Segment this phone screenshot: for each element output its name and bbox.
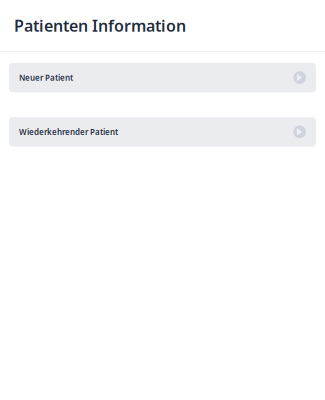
- button[interactable]: Neuer Patient: [9, 63, 316, 92]
- staticText: Patienten Information: [14, 15, 186, 36]
- staticText: Wiederkehrender Patient: [19, 127, 118, 137]
- button[interactable]: Wiederkehrender Patient: [9, 117, 316, 147]
- staticText: Neuer Patient: [19, 72, 73, 83]
